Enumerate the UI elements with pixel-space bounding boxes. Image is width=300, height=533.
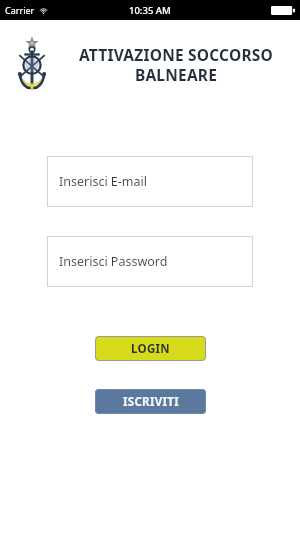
button[interactable]: ISCRIVITI: [95, 389, 206, 414]
staticText: Inserisci E-mail: [59, 173, 147, 190]
staticText: LOGIN: [131, 341, 170, 357]
staticText: Carrier: [5, 4, 35, 16]
button[interactable]: Inserisci Password: [47, 236, 253, 287]
staticText: ISCRIVITI: [123, 394, 179, 410]
button[interactable]: LOGIN: [95, 336, 206, 361]
staticText: Inserisci Password: [59, 253, 168, 270]
staticText: 10:35 AM: [129, 4, 171, 17]
button[interactable]: Inserisci E-mail: [47, 156, 253, 207]
staticText: ATTIVAZIONE SOCCORSO BALNEARE: [62, 44, 290, 85]
